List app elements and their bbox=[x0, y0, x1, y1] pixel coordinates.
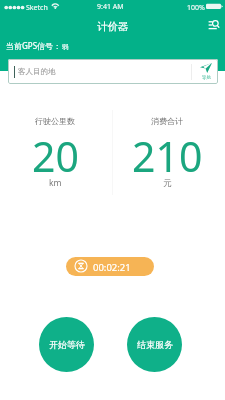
staticText: 元 bbox=[163, 178, 172, 189]
button[interactable]: 开始等待 bbox=[39, 317, 94, 372]
button[interactable]: 导航 bbox=[192, 59, 218, 84]
staticText: 结束服务 bbox=[137, 339, 173, 350]
button[interactable]: 订单查询 bbox=[204, 16, 222, 34]
staticText: 客人目的地 bbox=[18, 67, 56, 76]
staticText: 计价器 bbox=[97, 20, 129, 33]
staticText: 100% bbox=[187, 3, 205, 13]
staticText: 开始等待 bbox=[49, 339, 85, 350]
button[interactable]: 00:02:21 bbox=[66, 257, 154, 276]
staticText: 当前GPS信号： bbox=[6, 40, 62, 51]
staticText: km bbox=[49, 177, 62, 189]
staticText: 导航 bbox=[202, 75, 211, 81]
staticText: 00:02:21 bbox=[93, 261, 131, 274]
staticText: 行驶公里数 bbox=[35, 116, 75, 126]
staticText: 弱 bbox=[62, 43, 69, 51]
staticText: 20 bbox=[32, 128, 79, 172]
staticText: 9:41 AM bbox=[97, 2, 124, 12]
staticText: 消费合计 bbox=[151, 116, 183, 126]
staticText: 210 bbox=[132, 128, 203, 172]
button[interactable]: 结束服务 bbox=[127, 317, 182, 372]
staticText: Sketch bbox=[26, 3, 48, 13]
